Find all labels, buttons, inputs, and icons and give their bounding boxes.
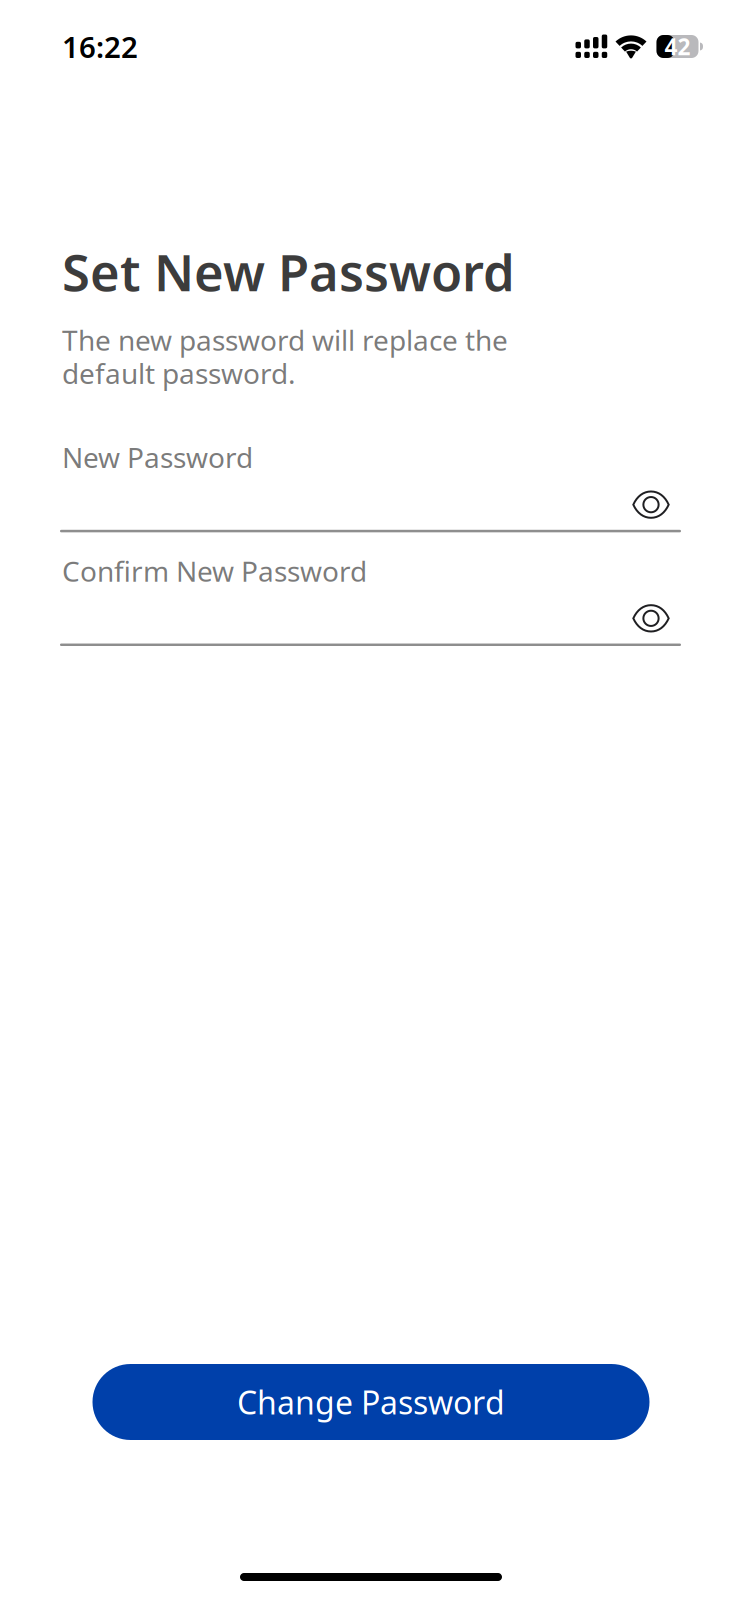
staticText: 16:22 — [62, 27, 138, 66]
staticText: Set New Password — [62, 238, 515, 305]
staticText: New Password — [62, 439, 253, 476]
button[interactable]: New Password — [62, 439, 680, 532]
button[interactable]: Show New Password — [632, 491, 670, 519]
button[interactable]: Show Confirm New Password — [632, 604, 670, 632]
staticText: Change Password — [237, 1381, 505, 1423]
button[interactable]: Confirm New Password — [62, 552, 680, 646]
staticText: Confirm New Password — [62, 552, 367, 589]
staticText: default password. — [62, 354, 296, 392]
staticText: 42 — [664, 31, 690, 61]
button[interactable]: Change Password — [92, 1364, 649, 1440]
staticText: The new password will replace the — [62, 321, 508, 358]
